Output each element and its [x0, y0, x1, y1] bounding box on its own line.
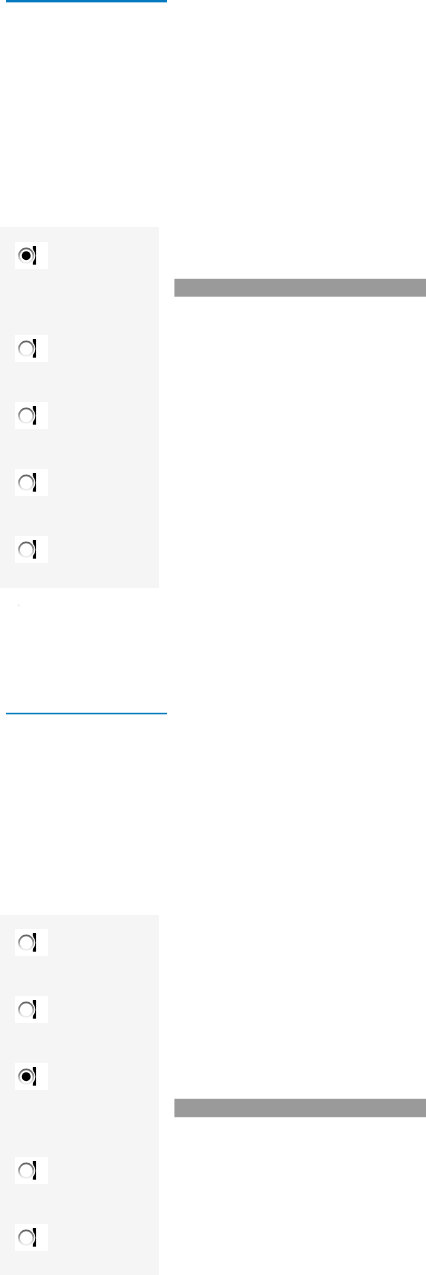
button[interactable]: Answer 1, selected	[15, 242, 48, 269]
button[interactable]: Answer 5	[15, 1224, 48, 1251]
button[interactable]: Answer 4	[15, 1157, 48, 1184]
button[interactable]: Answer 4	[15, 469, 48, 496]
button[interactable]: Answer 2	[15, 335, 48, 362]
button[interactable]: Answer 3, selected	[15, 1063, 48, 1090]
button[interactable]: Answer 1	[15, 929, 48, 956]
button[interactable]: Answer 2	[15, 996, 48, 1023]
button[interactable]: Answer 5	[15, 536, 48, 563]
button[interactable]: Answer 3	[15, 402, 48, 429]
